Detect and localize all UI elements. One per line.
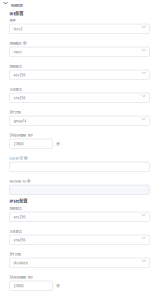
button[interactable]: 27800 — [9, 139, 52, 149]
staticText: DH分组 — [9, 251, 20, 256]
staticText: 27800 — [13, 283, 23, 288]
staticText: 认证算法 — [9, 228, 21, 233]
staticText: aes256 — [13, 72, 25, 77]
button[interactable]: 27800 — [9, 281, 52, 291]
button[interactable]: disabled — [9, 258, 149, 268]
staticText: Remote ID — [9, 178, 25, 183]
staticText: 27800 — [13, 141, 23, 146]
staticText: main — [13, 49, 21, 54]
staticText: aes256 — [13, 214, 25, 219]
staticText: SA生存周期（秒） — [9, 274, 34, 279]
staticText: DH分组 — [9, 109, 20, 114]
staticText: sha256 — [13, 237, 25, 242]
staticText: 版本 — [9, 17, 15, 22]
button[interactable]: aes256 — [9, 70, 149, 80]
staticText: 认证算法 — [9, 86, 21, 91]
button[interactable] — [9, 162, 149, 172]
staticText: sha256 — [13, 95, 25, 100]
button[interactable]: group14 — [9, 116, 149, 126]
staticText: IPsec配置 — [9, 198, 27, 204]
button[interactable]: aes256 — [9, 212, 149, 222]
staticText: SA生存周期（秒） — [9, 132, 34, 137]
staticText: 秒 — [56, 141, 59, 146]
staticText: 协商模式 — [9, 40, 21, 45]
button[interactable]: sha256 — [9, 93, 149, 103]
staticText: disabled — [13, 260, 27, 265]
button[interactable]: sha256 — [9, 235, 149, 245]
button[interactable]: main — [9, 47, 149, 57]
staticText: 加密算法 — [9, 63, 21, 68]
staticText: Local ID — [9, 155, 22, 160]
staticText: ikev2 — [13, 26, 22, 31]
staticText: group14 — [13, 118, 26, 123]
button[interactable]: 高级配置 — [3, 1, 159, 9]
button[interactable]: ikev2 — [9, 24, 149, 34]
staticText: IKE配置 — [9, 10, 23, 16]
staticText: 加密算法 — [9, 205, 21, 210]
button[interactable] — [9, 185, 149, 195]
staticText: 秒 — [56, 283, 59, 288]
staticText: 高级配置 — [10, 2, 22, 7]
